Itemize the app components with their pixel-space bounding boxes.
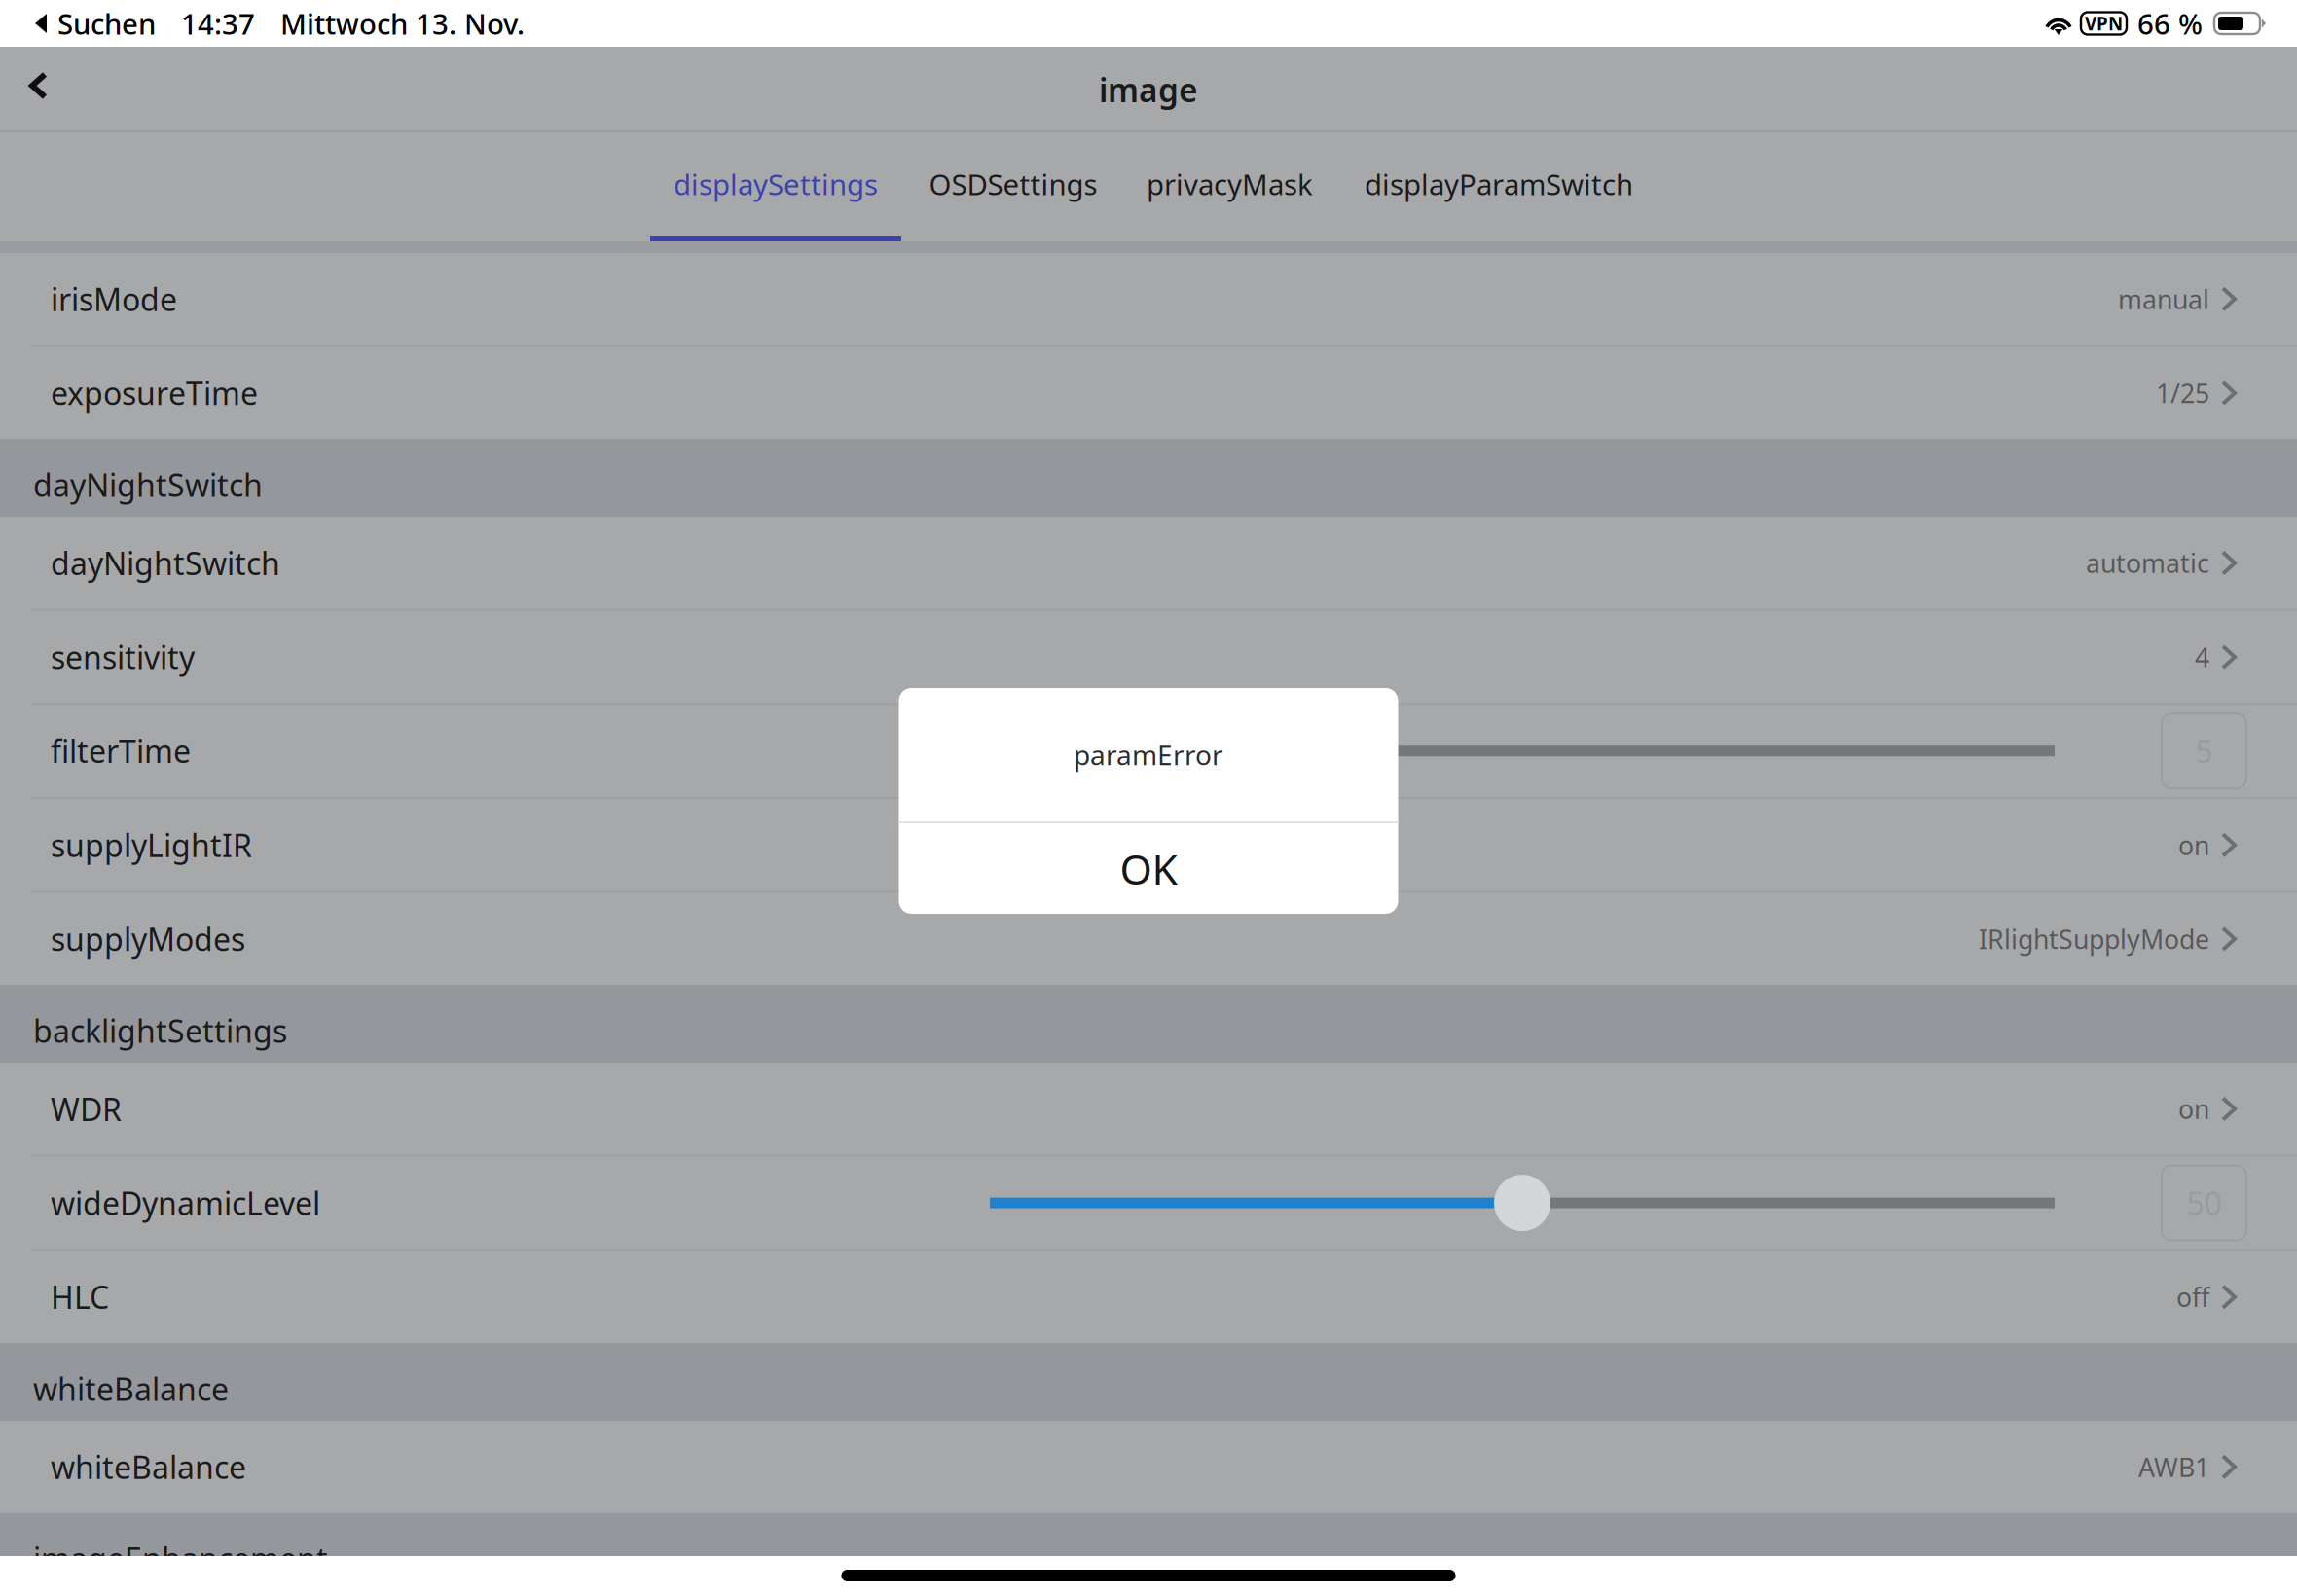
staticText: 14:37	[181, 4, 255, 42]
button[interactable]: OK	[899, 823, 1398, 914]
staticText: whiteBalance	[33, 1368, 229, 1409]
staticText: 1/25	[2156, 376, 2209, 410]
staticText: image	[1099, 68, 1198, 111]
button[interactable]: supplyLightIR	[0, 799, 2297, 891]
staticText: 5	[2195, 730, 2213, 772]
staticText: manual	[2118, 282, 2209, 316]
button[interactable]: displaySettings	[650, 132, 901, 241]
button[interactable]: WDR	[0, 1063, 2297, 1155]
staticText: automatic	[2086, 546, 2209, 580]
staticText: privacyMask	[1147, 165, 1313, 203]
staticText: Mittwoch 13. Nov.	[280, 4, 525, 42]
staticText: Suchen	[57, 4, 156, 42]
staticText: dayNightSwitch	[33, 464, 263, 506]
staticText: OK	[1120, 841, 1177, 896]
staticText: paramError	[1074, 737, 1223, 773]
button[interactable]: supplyModes	[0, 893, 2297, 985]
staticText: on	[2178, 828, 2209, 862]
staticText: backlightSettings	[33, 1010, 287, 1052]
staticText: 66 %	[2137, 4, 2203, 42]
staticText: sensitivity	[51, 636, 195, 678]
staticText: filterTime	[51, 730, 191, 772]
staticText: exposureTime	[51, 372, 258, 414]
button[interactable]: exposureTime	[0, 347, 2297, 439]
button[interactable]: OSDSettings	[930, 132, 1096, 241]
staticText: WDR	[51, 1088, 122, 1130]
staticText: whiteBalance	[51, 1446, 246, 1488]
staticText: 50	[2187, 1182, 2222, 1224]
staticText: wideDynamicLevel	[51, 1182, 320, 1224]
staticText: irisMode	[51, 278, 177, 320]
button[interactable]: filterTime	[0, 705, 2297, 797]
button[interactable]: irisMode	[0, 253, 2297, 345]
button[interactable]: HLC	[0, 1251, 2297, 1343]
button[interactable]: Back	[0, 47, 83, 132]
staticText: imageEnhancement	[33, 1538, 328, 1579]
staticText: supplyLightIR	[51, 824, 252, 866]
button[interactable]: dayNightSwitch	[0, 517, 2297, 609]
staticText: on	[2178, 1092, 2209, 1126]
button[interactable]: displayParamSwitch	[1367, 132, 1631, 241]
staticText: displayParamSwitch	[1365, 165, 1633, 203]
staticText: OSDSettings	[929, 165, 1097, 203]
staticText: supplyModes	[51, 918, 245, 960]
button[interactable]: privacyMask	[1148, 132, 1311, 241]
staticText: displaySettings	[674, 165, 878, 203]
staticText: AWB1	[2138, 1450, 2209, 1484]
staticText: HLC	[51, 1276, 109, 1318]
button[interactable]: wideDynamicLevel	[0, 1157, 2297, 1249]
button[interactable]: sensitivity	[0, 611, 2297, 703]
staticText: dayNightSwitch	[51, 542, 280, 584]
staticText: IRlightSupplyMode	[1979, 922, 2209, 956]
staticText: VPN	[2085, 11, 2123, 35]
staticText: 4	[2195, 640, 2209, 674]
staticText: off	[2176, 1280, 2209, 1314]
button[interactable]: whiteBalance	[0, 1421, 2297, 1513]
